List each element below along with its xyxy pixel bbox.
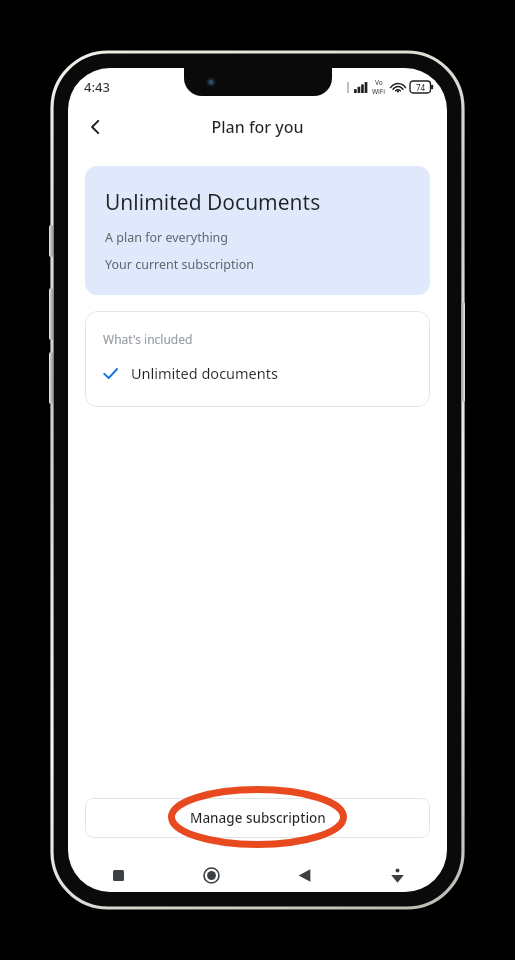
- button[interactable]: Unlimited Documents: [85, 166, 430, 295]
- button[interactable]: Recent apps: [96, 858, 140, 892]
- staticText: What's included: [103, 331, 193, 347]
- staticText: Unlimited documents: [131, 363, 278, 383]
- staticText: Vo: [375, 78, 383, 87]
- button[interactable]: Hide keyboard: [375, 858, 419, 892]
- button[interactable]: What's included: [85, 311, 430, 407]
- button[interactable]: Back: [74, 106, 116, 148]
- button[interactable]: Home: [189, 858, 233, 892]
- staticText: 74: [416, 82, 426, 93]
- button[interactable]: Manage subscription: [85, 798, 430, 838]
- staticText: WiFi: [372, 87, 386, 96]
- staticText: Manage subscription: [190, 809, 326, 827]
- staticText: A plan for everything: [105, 229, 229, 246]
- button[interactable]: Back: [282, 858, 326, 892]
- staticText: Your current subscription: [105, 256, 254, 273]
- staticText: Unlimited Documents: [105, 188, 321, 217]
- staticText: Plan for you: [211, 116, 304, 138]
- staticText: 4:43: [84, 78, 110, 96]
